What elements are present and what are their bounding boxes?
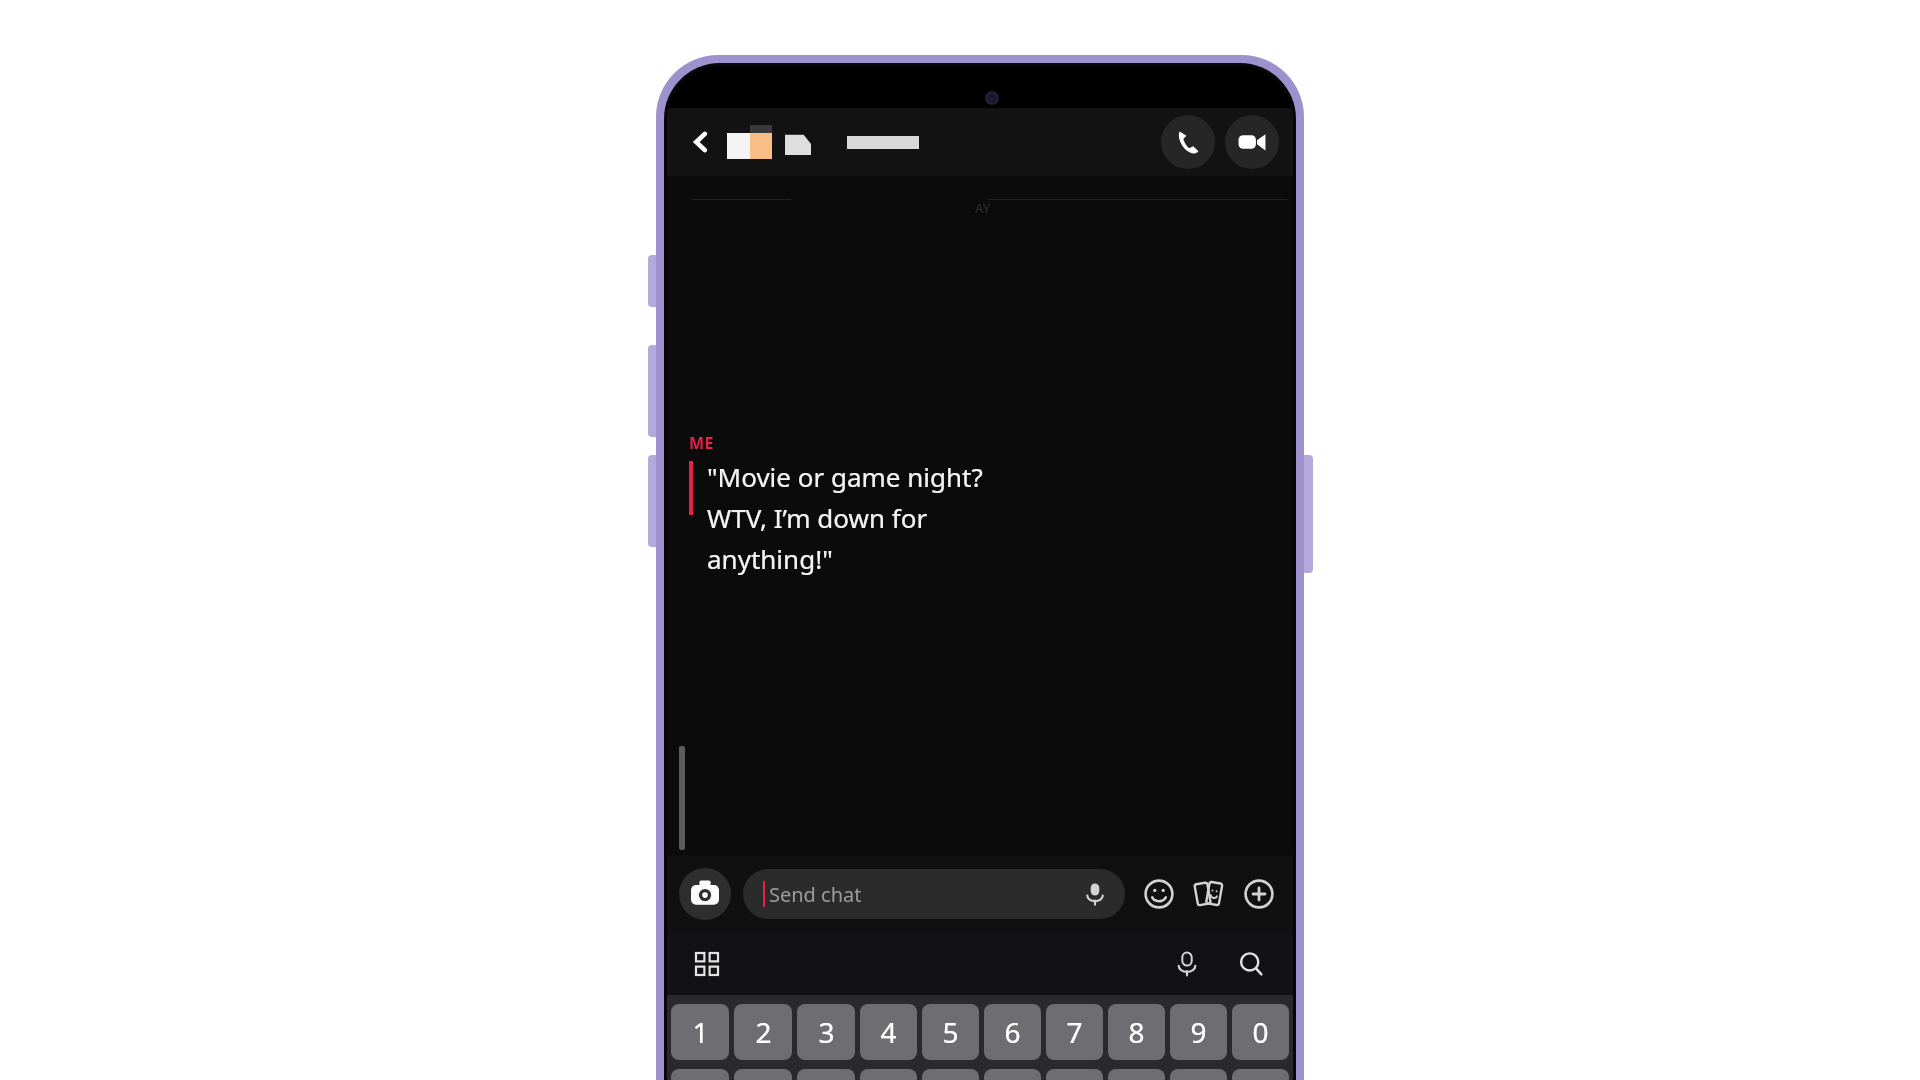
staticText: 2 — [755, 1013, 772, 1051]
staticText: AY — [975, 199, 991, 217]
button[interactable] — [860, 1069, 917, 1080]
staticText: 1 — [692, 1013, 709, 1051]
staticText: 0 — [1252, 1013, 1269, 1051]
button[interactable] — [922, 1069, 979, 1080]
button[interactable] — [734, 1069, 792, 1080]
button[interactable]: Keyboard menu — [689, 946, 725, 982]
button[interactable]: 8 — [1108, 1004, 1165, 1060]
button[interactable]: Open camera — [679, 868, 731, 920]
button[interactable]: Voice input — [1167, 944, 1207, 984]
button[interactable]: 9 — [1170, 1004, 1227, 1060]
button[interactable]: Stickers — [1189, 874, 1229, 914]
button[interactable]: Send chat — [743, 869, 1125, 919]
staticText: 9 — [1190, 1013, 1207, 1051]
staticText: Send chat — [769, 881, 862, 908]
button[interactable]: 7 — [1046, 1004, 1103, 1060]
button[interactable]: Emoji — [1139, 874, 1179, 914]
button[interactable] — [671, 1069, 729, 1080]
button[interactable]: 4 — [860, 1004, 917, 1060]
staticText: ME — [689, 432, 714, 454]
staticText: "Movie or game night? WTV, I’m down for … — [707, 459, 983, 577]
staticText: 8 — [1128, 1013, 1145, 1051]
button[interactable] — [1232, 1069, 1289, 1080]
button[interactable]: 0 — [1232, 1004, 1289, 1060]
staticText: 7 — [1066, 1013, 1083, 1051]
button[interactable]: 5 — [922, 1004, 979, 1060]
staticText: 6 — [1004, 1013, 1021, 1051]
button[interactable]: More options — [1239, 874, 1279, 914]
staticText: 4 — [880, 1013, 897, 1051]
button[interactable]: 1 — [671, 1004, 729, 1060]
button[interactable] — [1108, 1069, 1165, 1080]
button[interactable]: Voice call — [1161, 115, 1215, 169]
staticText: 3 — [818, 1013, 835, 1051]
button[interactable] — [1046, 1069, 1103, 1080]
button[interactable]: 2 — [734, 1004, 792, 1060]
staticText: 5 — [942, 1013, 959, 1051]
button[interactable] — [984, 1069, 1041, 1080]
button[interactable]: Back — [681, 122, 721, 162]
button[interactable]: Video call — [1225, 115, 1279, 169]
button[interactable]: 3 — [797, 1004, 855, 1060]
button[interactable] — [797, 1069, 855, 1080]
button[interactable]: 6 — [984, 1004, 1041, 1060]
button[interactable] — [1170, 1069, 1227, 1080]
button[interactable]: Profile — [727, 125, 773, 159]
button[interactable]: Search — [1231, 944, 1271, 984]
